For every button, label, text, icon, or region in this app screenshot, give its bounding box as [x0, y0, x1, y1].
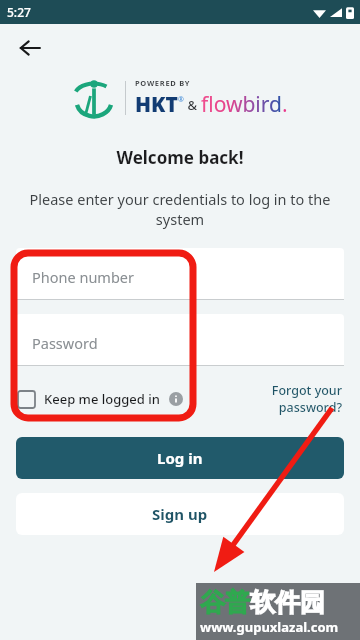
staticText: HKT — [135, 90, 178, 119]
staticText: ® — [178, 95, 184, 105]
button[interactable]: Log in — [16, 437, 344, 479]
button[interactable]: Back — [10, 28, 50, 68]
staticText: 谷普 — [200, 587, 250, 618]
staticText: & — [184, 96, 201, 114]
button[interactable]: Keep me logged in — [18, 386, 160, 412]
staticText: 5:27 — [7, 4, 31, 20]
staticText: Sign up — [152, 504, 208, 524]
staticText: www.gupuxlazal.com — [200, 618, 339, 636]
staticText: Keep me logged in — [44, 390, 160, 408]
button[interactable]: Password — [16, 314, 344, 366]
staticText: Welcome back! — [0, 146, 360, 169]
button[interactable]: Forgot your password? — [258, 382, 342, 415]
staticText: POWERED BY — [135, 78, 191, 88]
button[interactable]: Sign up — [16, 493, 344, 535]
button[interactable]: Phone number — [16, 248, 344, 300]
staticText: . — [282, 90, 288, 119]
button[interactable]: Information — [166, 389, 186, 409]
staticText: flowbird — [201, 90, 282, 119]
staticText: Please enter your credentials to log in … — [24, 189, 336, 230]
staticText: Phone number — [32, 267, 134, 287]
staticText: Log in — [157, 448, 203, 468]
staticText: 软件园 — [250, 587, 325, 618]
staticText: Password — [32, 333, 98, 353]
staticText: Forgot your password? — [258, 382, 342, 415]
